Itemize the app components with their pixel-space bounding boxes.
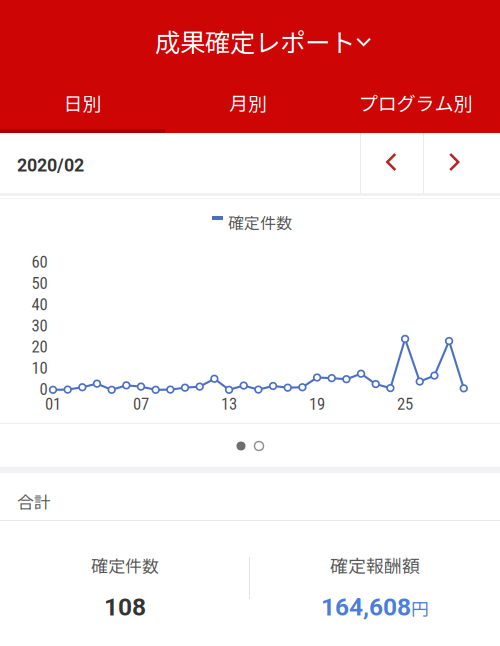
staticText: 確定件数 xyxy=(228,210,292,234)
button[interactable]: 月別 xyxy=(165,79,331,126)
staticText: 2020/02 xyxy=(17,155,84,176)
staticText: 07 xyxy=(133,394,149,414)
staticText: 月別 xyxy=(229,89,267,116)
staticText: 20 xyxy=(31,337,47,357)
button[interactable]: Next month xyxy=(424,133,484,191)
staticText: 10 xyxy=(31,358,47,378)
staticText: 01 xyxy=(45,394,61,414)
staticText: 確定報酬額 xyxy=(330,552,420,578)
staticText: 日別 xyxy=(63,89,101,116)
staticText: 164,608 xyxy=(321,593,411,621)
button[interactable]: プログラム別 xyxy=(331,79,500,126)
button[interactable]: Previous month xyxy=(360,133,423,191)
staticText: プログラム別 xyxy=(358,89,472,116)
staticText: 40 xyxy=(31,295,47,314)
staticText: 19 xyxy=(309,394,325,414)
staticText: 成果確定レポート xyxy=(155,23,355,59)
staticText: 50 xyxy=(31,273,47,293)
button[interactable]: 成果確定レポート xyxy=(0,0,500,82)
staticText: 合計 xyxy=(17,489,51,513)
staticText: 0 xyxy=(39,379,47,399)
staticText: 30 xyxy=(31,316,47,335)
staticText: 60 xyxy=(31,252,47,272)
button[interactable]: 日別 xyxy=(0,79,165,126)
staticText: 13 xyxy=(221,394,237,414)
staticText: 25 xyxy=(397,394,413,414)
staticText: 108 xyxy=(104,593,146,621)
staticText: 確定件数 xyxy=(91,553,159,577)
staticText: 円 xyxy=(411,595,429,621)
